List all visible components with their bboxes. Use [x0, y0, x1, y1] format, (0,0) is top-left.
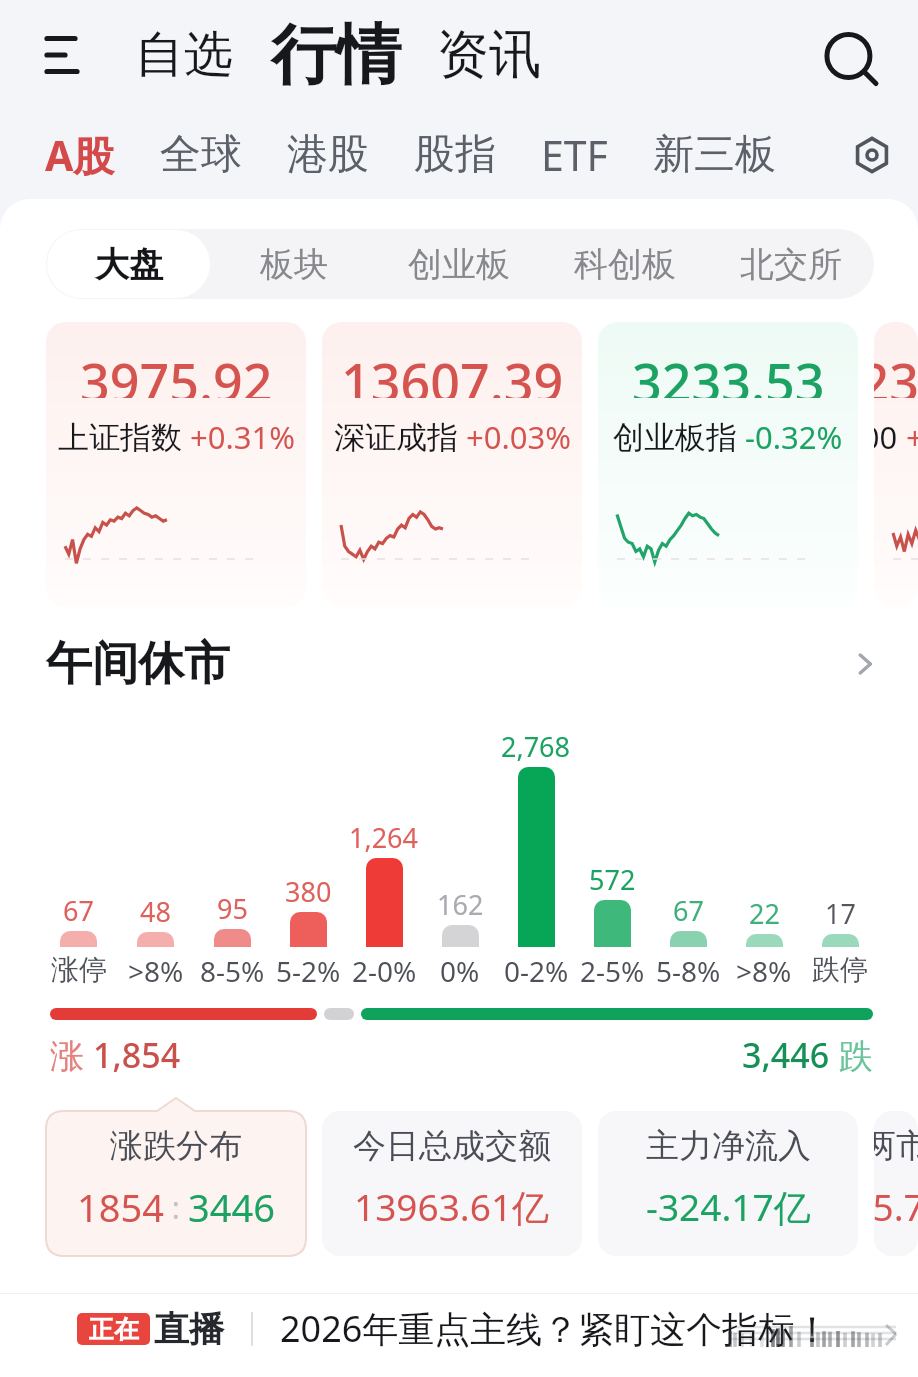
button[interactable]: 科创板: [543, 230, 707, 298]
button[interactable]: 正在: [77, 1294, 918, 1363]
staticText: 0-2%: [504, 952, 569, 985]
button[interactable]: 3233.53: [598, 322, 858, 607]
staticText: 1854: [77, 1181, 164, 1233]
staticText: 0%: [440, 952, 480, 985]
button[interactable]: 涨跌分布: [46, 1111, 306, 1256]
button[interactable]: 大盘: [47, 230, 210, 298]
staticText: 大盘: [95, 243, 163, 286]
staticText: 新三板: [653, 129, 776, 181]
staticText: 22: [749, 895, 780, 932]
staticText: 2-0%: [352, 952, 417, 985]
staticText: 17: [825, 895, 856, 932]
staticText: 自选: [135, 24, 233, 86]
staticText: 沪深300: [874, 416, 898, 458]
button[interactable]: 行情: [267, 6, 405, 104]
button[interactable]: 资讯: [433, 14, 545, 96]
staticText: 5365.72亿: [874, 1181, 918, 1232]
staticText: 95: [217, 890, 248, 927]
staticText: 沪深两市总额: [874, 1125, 918, 1167]
staticText: 跌: [830, 1032, 873, 1078]
staticText: 13607.39: [341, 346, 564, 398]
button[interactable]: 今日总成交额: [322, 1111, 582, 1256]
staticText: -0.32%: [745, 416, 843, 458]
staticText: 8-5%: [200, 952, 265, 985]
button[interactable]: Menu: [29, 19, 101, 91]
button[interactable]: 创业板: [377, 230, 541, 298]
staticText: :: [164, 1187, 188, 1228]
staticText: 北交所: [740, 243, 842, 286]
button[interactable]: 新三板: [647, 119, 782, 191]
staticText: +0.20%: [906, 416, 918, 458]
staticText: 涨停: [51, 952, 107, 985]
staticText: ETF: [541, 127, 608, 183]
staticText: 股指: [414, 129, 496, 181]
staticText: 今日总成交额: [353, 1125, 551, 1167]
button[interactable]: 股指: [408, 119, 502, 191]
staticText: 162: [437, 886, 484, 923]
staticText: 3975.92: [80, 346, 273, 398]
staticText: 3233.53: [632, 346, 825, 398]
staticText: 主力净流入: [646, 1125, 811, 1167]
staticText: 1,854: [93, 1032, 181, 1078]
staticText: 572: [589, 861, 636, 898]
button[interactable]: 13607.39: [322, 322, 582, 607]
staticText: 5-2%: [276, 952, 341, 985]
staticText: 港股: [287, 129, 369, 181]
staticText: 科创板: [574, 243, 676, 286]
button[interactable]: 4123.88: [874, 322, 918, 607]
staticText: 涨: [50, 1032, 93, 1078]
staticText: 跌停: [812, 952, 868, 985]
staticText: 直播: [154, 1307, 224, 1351]
staticText: 上证指数: [58, 418, 182, 457]
staticText: 正在: [89, 1314, 139, 1345]
staticText: 4123.88: [874, 346, 918, 398]
staticText: +0.03%: [466, 416, 571, 458]
staticText: +0.31%: [190, 416, 295, 458]
staticText: 48: [140, 893, 171, 930]
staticText: 67: [63, 892, 94, 929]
staticText: -324.17亿: [646, 1181, 811, 1232]
staticText: 2,768: [501, 728, 571, 765]
button[interactable]: 主力净流入: [598, 1111, 858, 1256]
button[interactable]: Settings: [844, 127, 900, 183]
button[interactable]: 北交所: [709, 230, 873, 298]
button[interactable]: 午间休市: [46, 628, 880, 700]
staticText: >8%: [128, 952, 184, 985]
button[interactable]: Search: [819, 24, 881, 86]
staticText: 13963.61亿: [354, 1181, 550, 1232]
button[interactable]: A股: [39, 117, 121, 193]
button[interactable]: 板块: [212, 230, 375, 298]
staticText: 2026年重点主线？紧盯这个指标！: [280, 1304, 831, 1353]
staticText: 1,264: [349, 819, 419, 856]
staticText: 380: [285, 873, 332, 910]
staticText: 板块: [260, 243, 328, 286]
staticText: 2-5%: [580, 952, 645, 985]
button[interactable]: 自选: [131, 16, 237, 94]
button[interactable]: 全球: [154, 119, 248, 191]
staticText: 创业板: [408, 243, 510, 286]
staticText: 创业板指: [613, 418, 737, 457]
staticText: A股: [45, 127, 115, 183]
staticText: 3,446: [742, 1032, 830, 1078]
staticText: 5-8%: [656, 952, 721, 985]
staticText: 全球: [160, 129, 242, 181]
staticText: 深证成指: [334, 418, 458, 457]
button[interactable]: 沪深两市总额: [874, 1111, 918, 1256]
button[interactable]: 港股: [281, 119, 375, 191]
staticText: 行情: [271, 14, 401, 96]
button[interactable]: ETF: [535, 117, 614, 193]
staticText: 3446: [188, 1181, 275, 1233]
staticText: 67: [673, 892, 704, 929]
staticText: 涨跌分布: [110, 1125, 242, 1167]
staticText: >8%: [736, 952, 792, 985]
staticText: 资讯: [437, 22, 541, 88]
button[interactable]: 3975.92: [46, 322, 306, 607]
staticText: 午间休市: [46, 635, 230, 693]
